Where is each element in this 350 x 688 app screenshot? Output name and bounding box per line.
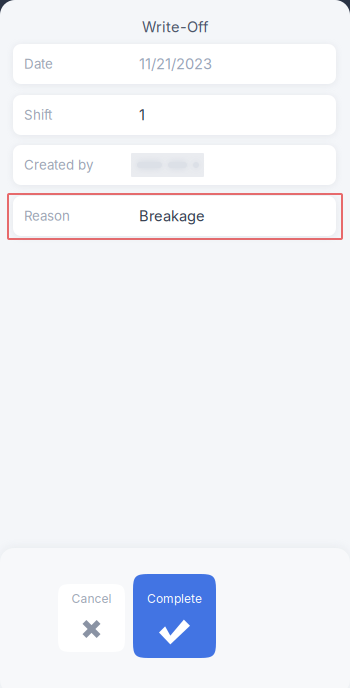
staticText: Complete [147, 591, 202, 606]
staticText: Created by [24, 157, 93, 173]
staticText: Cancel [71, 591, 111, 606]
staticText: Breakage [139, 207, 205, 225]
staticText: Write-Off [142, 18, 208, 36]
staticText: 1 [139, 106, 145, 124]
button[interactable]: Cancel [58, 584, 125, 652]
staticText: Date [24, 56, 53, 72]
staticText: Shift [24, 107, 52, 123]
staticText: 11/21/2023 [139, 55, 212, 73]
button[interactable]: Complete [133, 574, 216, 658]
staticText: Reason [24, 208, 70, 224]
